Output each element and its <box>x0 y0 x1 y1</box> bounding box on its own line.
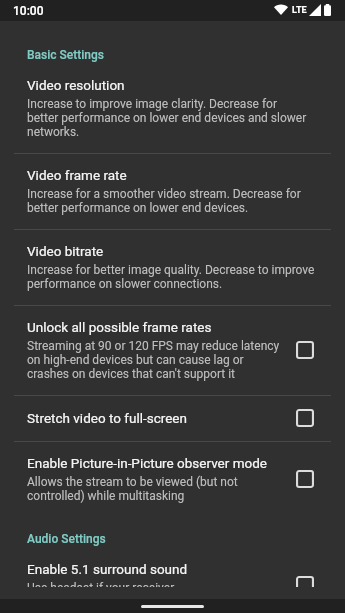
staticText: Video bitrate <box>27 243 104 259</box>
staticText: Allows the stream to be viewed (but not … <box>27 475 238 503</box>
staticText: Increase to improve image clarity. Decre… <box>27 97 307 139</box>
staticText: Video frame rate <box>27 167 127 183</box>
button[interactable]: Video frame rate <box>0 154 345 229</box>
button[interactable]: Unlock all possible frame rates <box>0 306 345 395</box>
staticText: Streaming at 90 or 120 FPS may reduce la… <box>27 339 280 381</box>
button[interactable]: Toggle Stretch video to full-screen <box>284 409 326 427</box>
button[interactable]: Toggle Enable Picture-in-Picture observe… <box>284 470 326 488</box>
staticText: LTE <box>292 5 307 16</box>
button[interactable]: Video resolution <box>0 64 345 153</box>
button[interactable]: Enable Picture-in-Picture observer mode <box>0 442 345 517</box>
button[interactable]: Toggle Unlock all possible frame rates <box>284 341 326 359</box>
staticText: Audio Settings <box>27 532 106 546</box>
button[interactable]: Toggle Enable 5.1 surround sound <box>284 576 326 587</box>
staticText: Enable Picture-in-Picture observer mode <box>27 455 268 471</box>
staticText: Basic Settings <box>27 48 105 62</box>
staticText: Video resolution <box>27 77 125 93</box>
staticText: 10:00 <box>13 4 44 18</box>
staticText: Increase for a smoother video stream. De… <box>27 187 301 215</box>
staticText: Stretch video to full-screen <box>27 410 187 426</box>
button[interactable]: Video bitrate <box>0 230 345 305</box>
staticText: Unlock all possible frame rates <box>27 319 212 335</box>
button[interactable]: Enable 5.1 surround sound <box>0 548 345 587</box>
staticText: Enable 5.1 surround sound <box>27 561 188 577</box>
staticText: Use headset if your receiver supports it <box>27 581 175 587</box>
staticText: Increase for better image quality. Decre… <box>27 263 315 291</box>
button[interactable]: Stretch video to full-screen <box>0 396 345 441</box>
